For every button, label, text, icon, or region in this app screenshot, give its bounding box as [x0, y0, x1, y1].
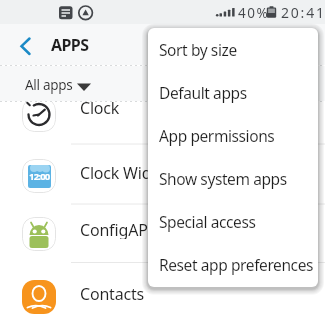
button[interactable]: Special access [148, 200, 318, 243]
staticText: App permissions [159, 125, 275, 146]
button[interactable]: Default apps [148, 71, 318, 114]
staticText: 40% [238, 4, 270, 22]
button[interactable]: All apps [0, 66, 325, 101]
staticText: 20:41 [281, 3, 325, 22]
staticText: 12:00 [29, 170, 50, 183]
staticText: Default apps [159, 82, 247, 103]
button[interactable]: Show system apps [148, 157, 318, 200]
staticText: Contacts [80, 283, 144, 303]
button[interactable]: Reset app preferences [148, 243, 318, 286]
staticText: APPS [51, 34, 89, 56]
staticText: Sort by size [159, 39, 237, 60]
button[interactable]: Sort by size [148, 28, 318, 71]
button[interactable] [0, 0, 325, 325]
staticText: ConfigAPK [80, 219, 158, 239]
staticText: Special access [159, 211, 256, 232]
staticText: Clock Widget [80, 162, 176, 182]
button[interactable] [11, 33, 41, 63]
button[interactable]: App permissions [148, 114, 318, 157]
staticText: Reset app preferences [159, 254, 314, 275]
staticText: All apps [25, 76, 73, 94]
staticText: Clock [80, 97, 120, 117]
staticText: Show system apps [159, 168, 287, 189]
